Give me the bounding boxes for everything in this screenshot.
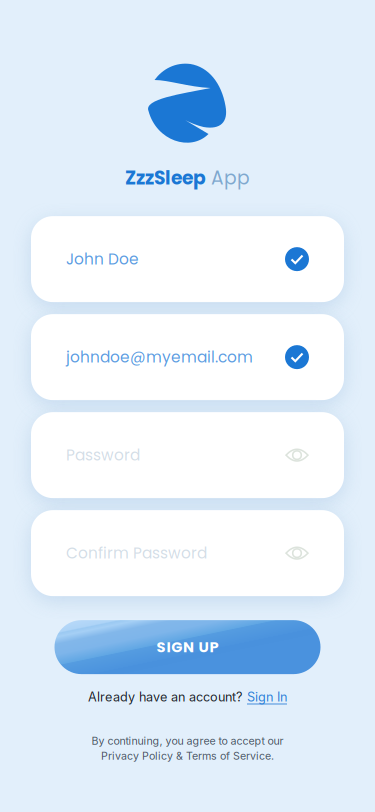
button[interactable]: Confirm Password	[31, 510, 344, 596]
staticText: ZzzSleep	[125, 165, 206, 191]
button[interactable]: John Doe	[31, 216, 344, 302]
staticText: App	[206, 165, 250, 191]
staticText: Confirm Password	[66, 542, 207, 564]
staticText: John Doe	[66, 248, 139, 270]
staticText: By continuing, you agree to accept our	[91, 734, 283, 747]
button[interactable]: johndoe@myemail.com	[31, 314, 344, 400]
button[interactable]: Sign In	[247, 689, 287, 704]
staticText: Sign In	[247, 689, 287, 704]
button[interactable]: Password	[31, 412, 344, 498]
staticText: Privacy Policy & Terms of Service.	[101, 749, 274, 762]
staticText: johndoe@myemail.com	[66, 346, 253, 368]
staticText: SIGN UP	[157, 637, 218, 657]
staticText: Password	[66, 444, 140, 466]
staticText: Already have an account?	[88, 689, 242, 704]
button[interactable]: SIGN UP	[54, 620, 320, 674]
